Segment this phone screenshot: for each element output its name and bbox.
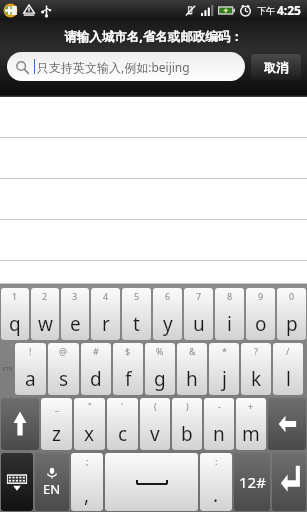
- button[interactable]: ;: [71, 453, 103, 511]
- staticText: s: [59, 366, 69, 392]
- staticText: y: [163, 311, 173, 337]
- button[interactable]: [0, 138, 307, 179]
- staticText: w: [38, 311, 53, 337]
- button[interactable]: 4: [91, 288, 120, 340]
- staticText: 取消: [264, 60, 288, 75]
- button[interactable]: ?: [241, 343, 271, 395]
- button[interactable]: -: [204, 398, 234, 450]
- staticText: .: [213, 482, 219, 508]
- staticText: @: [59, 345, 68, 357]
- staticText: 8: [227, 290, 233, 302]
- button[interactable]: 0: [277, 288, 306, 340]
- button[interactable]: 只支持英文输入,例如:beijing: [7, 52, 245, 81]
- staticText: 6: [165, 290, 171, 302]
- staticText: 12#: [239, 472, 266, 492]
- button[interactable]: 2: [31, 288, 59, 340]
- button[interactable]: ": [74, 398, 105, 450]
- staticText: ?: [254, 345, 258, 357]
- button[interactable]: [0, 220, 307, 261]
- button[interactable]: 5: [122, 288, 151, 340]
- button[interactable]: +: [236, 398, 266, 450]
- staticText: q: [9, 311, 21, 337]
- staticText: -: [218, 400, 221, 412]
- button[interactable]: Hide keyboard: [1, 453, 33, 511]
- button[interactable]: ): [172, 398, 202, 450]
- button[interactable]: $: [113, 343, 143, 395]
- staticText: _: [55, 400, 59, 412]
- staticText: #: [93, 345, 99, 357]
- staticText: /: [286, 345, 290, 357]
- button[interactable]: ': [107, 398, 138, 450]
- staticText: g: [154, 366, 166, 392]
- staticText: a: [25, 366, 36, 392]
- button[interactable]: Shift: [1, 398, 39, 450]
- staticText: ,: [84, 482, 90, 508]
- staticText: r: [102, 311, 110, 337]
- button[interactable]: [0, 261, 307, 284]
- button[interactable]: 6: [153, 288, 182, 340]
- button[interactable]: [0, 179, 307, 220]
- staticText: j: [222, 366, 227, 392]
- staticText: ): [186, 400, 189, 412]
- staticText: 5: [134, 290, 140, 302]
- button[interactable]: (: [140, 398, 170, 450]
- button[interactable]: 3: [61, 288, 89, 340]
- staticText: m: [242, 421, 260, 447]
- button[interactable]: 9: [246, 288, 275, 340]
- staticText: 4: [103, 290, 109, 302]
- staticText: 4:25: [277, 2, 301, 18]
- staticText: b: [181, 421, 193, 447]
- button[interactable]: #: [81, 343, 111, 395]
- staticText: p: [286, 311, 298, 337]
- button[interactable]: /: [273, 343, 303, 395]
- staticText: :: [215, 455, 218, 467]
- button[interactable]: Input language EN: [35, 453, 69, 511]
- button[interactable]: :: [200, 453, 232, 511]
- button[interactable]: 7: [184, 288, 213, 340]
- staticText: $: [125, 345, 131, 357]
- staticText: &: [189, 345, 196, 357]
- staticText: v: [150, 421, 160, 447]
- button[interactable]: 1: [1, 288, 29, 340]
- staticText: *: [222, 345, 227, 357]
- button[interactable]: %: [145, 343, 175, 395]
- staticText: z: [52, 421, 61, 447]
- staticText: u: [193, 311, 205, 337]
- staticText: l: [286, 366, 291, 392]
- button[interactable]: *: [209, 343, 239, 395]
- staticText: 只支持英文输入,例如:beijing: [37, 59, 190, 75]
- staticText: 7: [196, 290, 202, 302]
- button[interactable]: _: [41, 398, 72, 450]
- staticText: ": [88, 400, 92, 412]
- staticText: h: [186, 366, 198, 392]
- staticText: 请输入城市名,省名或邮政编码：: [64, 28, 243, 45]
- staticText: c: [118, 421, 128, 447]
- staticText: d: [90, 366, 102, 392]
- staticText: XT9: [2, 365, 13, 373]
- staticText: o: [255, 311, 267, 337]
- button[interactable]: 8: [215, 288, 244, 340]
- button[interactable]: &: [177, 343, 207, 395]
- button[interactable]: 取消: [251, 54, 301, 80]
- staticText: 3: [72, 290, 78, 302]
- staticText: t: [133, 311, 140, 337]
- button[interactable]: 12#: [234, 453, 270, 511]
- staticText: ;: [86, 455, 89, 467]
- staticText: 9: [258, 290, 264, 302]
- staticText: (: [154, 400, 157, 412]
- button[interactable]: Enter: [272, 453, 306, 511]
- staticText: 下午: [257, 5, 275, 16]
- staticText: %: [156, 345, 164, 357]
- button[interactable]: @: [48, 343, 79, 395]
- staticText: e: [70, 311, 81, 337]
- staticText: 2: [42, 290, 48, 302]
- button[interactable]: Space: [105, 453, 198, 511]
- staticText: k: [251, 366, 262, 392]
- button[interactable]: Backspace: [268, 398, 306, 450]
- staticText: f: [125, 366, 132, 392]
- staticText: !: [29, 345, 32, 357]
- staticText: EN: [43, 480, 61, 498]
- staticText: 0: [289, 290, 295, 302]
- button[interactable]: !: [15, 343, 46, 395]
- button[interactable]: [0, 97, 307, 138]
